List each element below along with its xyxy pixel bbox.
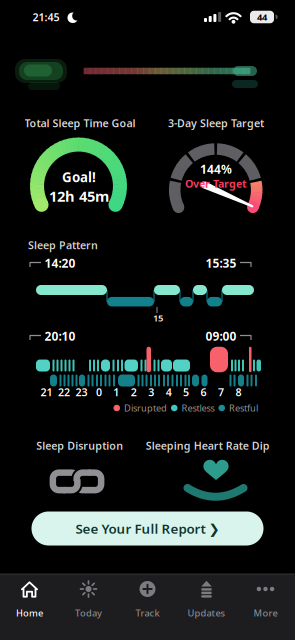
staticText: Track <box>135 607 159 619</box>
staticText: 12h 45m <box>49 186 109 206</box>
button[interactable]: Home <box>0 571 58 629</box>
staticText: Restful <box>229 402 258 414</box>
staticText: Restless <box>181 402 214 414</box>
staticText: Total Sleep Time Goal <box>24 116 135 130</box>
staticText: 8 <box>235 385 241 399</box>
staticText: 5 <box>183 385 189 399</box>
staticText: 15:35 <box>205 255 236 271</box>
staticText: 21 <box>41 385 53 399</box>
staticText: Goal! <box>62 168 96 186</box>
staticText: 14:20 <box>44 255 75 271</box>
button[interactable]: More <box>236 571 294 629</box>
staticText: 23 <box>75 385 87 399</box>
button[interactable]: See Your Full Report ❯ <box>31 511 263 545</box>
staticText: 20:10 <box>44 328 75 344</box>
staticText: Sleep Pattern <box>28 238 98 252</box>
staticText: 144% <box>200 161 232 177</box>
staticText: 6 <box>201 385 207 399</box>
staticText: 09:00 <box>205 328 236 344</box>
staticText: 44 <box>257 11 267 23</box>
staticText: Disrupted <box>124 402 167 414</box>
staticText: 4 <box>166 385 172 399</box>
staticText: Over Target <box>185 176 247 191</box>
staticText: 7 <box>218 385 224 399</box>
staticText: 1 <box>113 385 119 399</box>
staticText: 0 <box>96 385 102 399</box>
staticText: 2 <box>131 385 137 399</box>
staticText: 3-Day Sleep Target <box>168 116 264 130</box>
button[interactable]: Track <box>118 571 176 629</box>
staticText: 3 <box>148 385 154 399</box>
button[interactable]: Updates <box>177 571 235 629</box>
staticText: More <box>253 607 277 619</box>
staticText: Home <box>16 607 43 619</box>
button[interactable]: Today <box>59 571 117 629</box>
staticText: Sleeping Heart Rate Dip <box>146 438 270 453</box>
staticText: Updates <box>187 607 225 619</box>
staticText: 15 <box>153 312 163 324</box>
staticText: Sleep Disruption <box>36 438 123 453</box>
staticText: See Your Full Report ❯ <box>75 520 219 537</box>
staticText: 21:45 <box>32 10 59 24</box>
staticText: 22 <box>58 385 70 399</box>
staticText: Today <box>75 607 102 619</box>
